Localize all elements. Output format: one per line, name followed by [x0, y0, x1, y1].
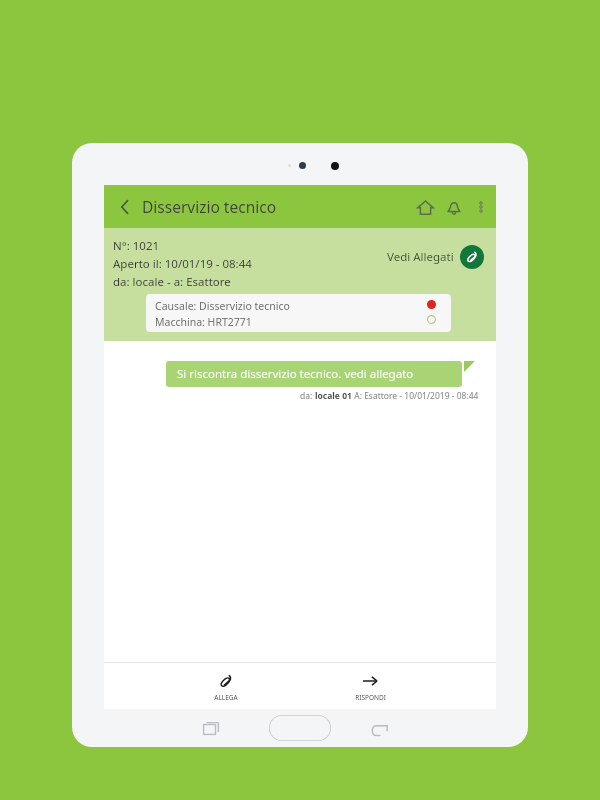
button[interactable]: More options	[468, 194, 494, 220]
button[interactable]: Home	[410, 192, 440, 222]
staticText: Si riscontra disservizio tecnico. vedi a…	[177, 366, 414, 382]
staticText: N°: 1021	[113, 238, 160, 254]
button[interactable]: Home	[269, 715, 331, 741]
button[interactable]: RISPONDI	[340, 671, 400, 702]
button[interactable]: Causale: Disservizio tecnico	[146, 294, 451, 332]
staticText: ALLEGA	[214, 693, 238, 702]
staticText: Macchina: HRT2771	[155, 315, 252, 329]
button[interactable]: ALLEGA	[196, 671, 256, 702]
staticText: locale 01	[315, 390, 352, 402]
other: Recents	[203, 721, 219, 737]
staticText: da: locale - a: Esattore	[113, 274, 231, 290]
staticText: RISPONDI	[355, 693, 386, 702]
staticText: Disservizio tecnico	[142, 196, 277, 217]
button[interactable]: Vedi Allegati	[387, 245, 484, 269]
staticText: Aperto il: 10/01/19 - 08:44	[113, 256, 252, 272]
staticText: da:	[300, 390, 315, 402]
button[interactable]: Notifications	[440, 193, 468, 221]
button[interactable]: Back	[110, 192, 140, 222]
staticText: A: Esattore - 10/01/2019 - 08:44	[352, 390, 479, 402]
staticText: Causale: Disservizio tecnico	[155, 299, 290, 313]
button[interactable]: Si riscontra disservizio tecnico. vedi a…	[166, 361, 462, 387]
staticText: Vedi Allegati	[387, 249, 454, 265]
other: Back	[371, 722, 388, 739]
